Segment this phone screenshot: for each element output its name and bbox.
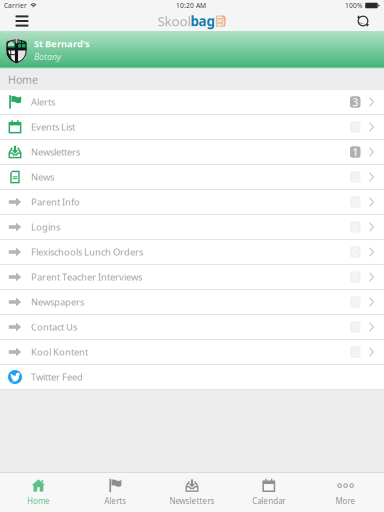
staticText: 0 <box>352 245 358 259</box>
button[interactable]: Flexischools Lunch Orders <box>0 240 384 265</box>
staticText: 10:20 AM <box>176 1 206 10</box>
staticText: Parent Info <box>31 196 80 208</box>
staticText: Newspapers <box>31 296 84 308</box>
staticText: Newsletters <box>169 496 214 506</box>
staticText: Home <box>27 496 50 506</box>
staticText: More <box>336 496 356 506</box>
staticText: Carrier <box>4 1 27 10</box>
staticText: Events List <box>31 121 75 133</box>
staticText: 0 <box>352 270 358 284</box>
staticText: 0 <box>352 320 358 334</box>
staticText: Newsletters <box>31 146 80 158</box>
staticText: 100% <box>345 1 363 10</box>
staticText: Twitter Feed <box>31 371 83 383</box>
staticText: News <box>31 171 54 183</box>
staticText: 0 <box>352 170 358 184</box>
button[interactable]: Newsletters <box>154 473 230 512</box>
staticText: 1 <box>352 145 358 159</box>
staticText: 0 <box>352 295 358 309</box>
staticText: Logins <box>31 221 60 233</box>
staticText: Skool <box>157 12 190 30</box>
button[interactable]: Alerts <box>77 473 154 512</box>
button[interactable]: Newspapers <box>0 290 384 315</box>
button[interactable]: Contact Us <box>0 315 384 340</box>
staticText: Parent Teacher Interviews <box>31 271 142 283</box>
button[interactable]: Events List <box>0 115 384 140</box>
staticText: 3 <box>352 95 358 109</box>
staticText: Alerts <box>31 96 55 108</box>
staticText: Kool Kontent <box>31 346 88 358</box>
button[interactable]: Kool Kontent <box>0 340 384 365</box>
button[interactable]: Calendar <box>230 473 307 512</box>
button[interactable]: More <box>307 473 384 512</box>
button[interactable]: Twitter Feed <box>0 365 384 390</box>
button[interactable]: News <box>0 165 384 190</box>
staticText: 0 <box>352 195 358 209</box>
button[interactable]: Alerts <box>0 90 384 115</box>
staticText: 0 <box>352 345 358 359</box>
button[interactable]: Newsletters <box>0 140 384 165</box>
button[interactable]: Parent Info <box>0 190 384 215</box>
staticText: Flexischools Lunch Orders <box>31 246 143 258</box>
button[interactable]: Logins <box>0 215 384 240</box>
button[interactable]: Home <box>0 473 77 512</box>
button[interactable]: Refresh <box>349 11 377 31</box>
staticText: bag <box>190 12 214 30</box>
button[interactable]: Parent Teacher Interviews <box>0 265 384 290</box>
staticText: Contact Us <box>31 321 77 333</box>
staticText: St Bernard's <box>34 37 90 50</box>
staticText: 0 <box>352 220 358 234</box>
staticText: Home <box>8 72 38 87</box>
staticText: 0 <box>352 120 358 134</box>
staticText: Alerts <box>104 496 126 506</box>
staticText: Calendar <box>252 496 285 506</box>
staticText: Botany <box>34 51 61 63</box>
button[interactable]: Menu <box>7 11 37 31</box>
